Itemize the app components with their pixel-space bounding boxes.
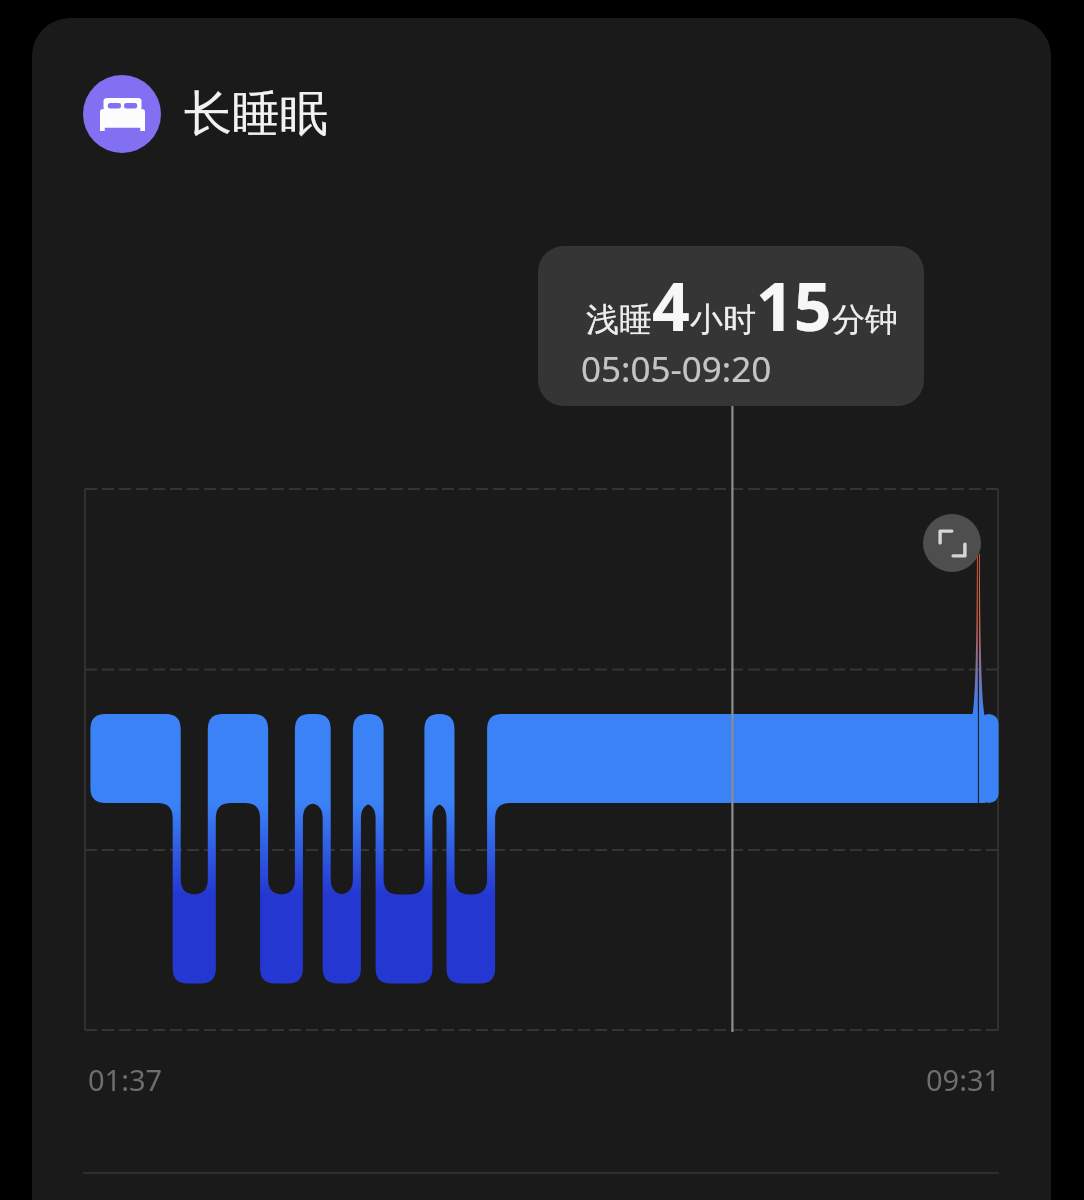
staticText: 分钟 [832, 299, 898, 341]
button[interactable]: Expand chart [923, 514, 981, 572]
button[interactable]: Long sleep chart card [32, 18, 1084, 1200]
button[interactable]: 长睡眠 [83, 75, 328, 153]
button[interactable]: Sleep stage graph [85, 489, 998, 1030]
staticText: 长睡眠 [184, 84, 328, 144]
staticText: 4 [652, 260, 690, 350]
staticText: 小时 [690, 299, 756, 341]
staticText: 01:37 [88, 1060, 163, 1099]
staticText: 05:05-09:20 [581, 345, 772, 393]
staticText: 浅睡 [586, 299, 652, 341]
staticText: 15 [756, 260, 832, 350]
button[interactable]: 浅睡 [538, 246, 924, 406]
staticText: 09:31 [926, 1060, 1001, 1099]
